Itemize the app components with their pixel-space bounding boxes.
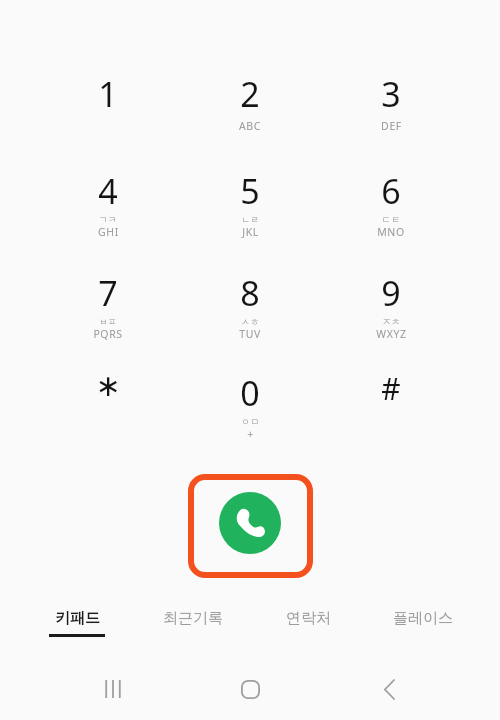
button[interactable]: 9	[329, 270, 453, 364]
staticText: TUV	[239, 327, 261, 341]
button[interactable]: Call	[219, 492, 281, 554]
staticText: 8	[240, 270, 260, 316]
staticText: PQRS	[93, 327, 123, 341]
button[interactable]: 연락처	[252, 602, 364, 648]
staticText: 9	[381, 270, 401, 316]
button[interactable]: 3	[329, 71, 453, 165]
staticText: 5	[240, 168, 260, 214]
button[interactable]: Home	[220, 664, 280, 714]
staticText: 4	[98, 168, 118, 214]
staticText: +	[247, 427, 254, 441]
staticText: 7	[98, 270, 118, 316]
staticText: 플레이스	[393, 609, 453, 628]
button[interactable]: 키패드	[21, 602, 133, 648]
staticText: 키패드	[55, 609, 100, 628]
staticText: WXYZ	[376, 327, 407, 341]
staticText: 3	[381, 71, 401, 117]
staticText: 0	[240, 370, 260, 416]
button[interactable]: 7	[46, 270, 170, 364]
staticText: ㅈㅊ	[382, 316, 400, 327]
staticText: 최근기록	[163, 609, 223, 628]
staticText: ∗	[95, 368, 121, 403]
staticText: ㄴㄹ	[241, 214, 259, 225]
button[interactable]: 플레이스	[367, 602, 479, 648]
staticText: ㅅㅎ	[241, 316, 259, 327]
staticText: 1	[98, 71, 118, 117]
staticText: ABC	[239, 119, 261, 133]
button[interactable]: 4	[46, 168, 170, 262]
button[interactable]: 5	[188, 168, 312, 262]
button[interactable]: 0	[188, 370, 312, 464]
staticText: ㅂㅍ	[99, 316, 117, 327]
button[interactable]: 8	[188, 270, 312, 364]
staticText: 2	[240, 71, 260, 117]
staticText: ㄷㅌ	[382, 214, 400, 225]
button[interactable]: 1	[46, 71, 170, 165]
button[interactable]: 최근기록	[137, 602, 249, 648]
button[interactable]: 2	[188, 71, 312, 165]
staticText: 6	[381, 168, 401, 214]
staticText: ㅇㅁ	[241, 416, 259, 427]
staticText: 연락처	[286, 609, 331, 628]
button[interactable]: ∗	[46, 368, 170, 462]
button[interactable]: 6	[329, 168, 453, 262]
button[interactable]: #	[329, 368, 453, 462]
button[interactable]: Back	[359, 664, 419, 714]
staticText: ㄱㅋ	[99, 214, 117, 225]
staticText: JKL	[242, 225, 259, 239]
staticText: GHI	[98, 225, 119, 239]
button[interactable]: Recents	[83, 664, 143, 714]
staticText: MNO	[377, 225, 405, 239]
staticText: DEF	[381, 119, 402, 133]
staticText: #	[381, 368, 401, 409]
